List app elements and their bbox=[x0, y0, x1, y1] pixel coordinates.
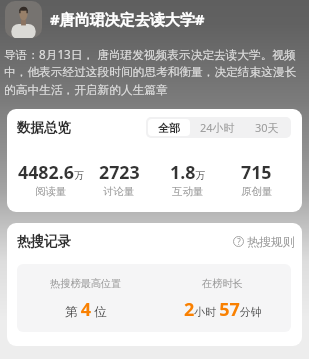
button[interactable]: 24小时 bbox=[190, 119, 245, 136]
staticText: 热搜规则 bbox=[247, 234, 295, 248]
staticText: 4482.6万 bbox=[18, 160, 84, 184]
button[interactable]: Avatar bbox=[5, 1, 42, 38]
staticText: 30天 bbox=[255, 120, 279, 135]
staticText: 热搜记录 bbox=[17, 233, 71, 250]
staticText: 数据总览 bbox=[17, 119, 71, 136]
staticText: 1.8万 bbox=[170, 160, 206, 184]
staticText: 导语：8月13日， 唐尚珺发视频表示决定去读大学。视频中，他表示经过这段时间的思… bbox=[4, 46, 306, 98]
staticText: 715 bbox=[241, 160, 272, 184]
staticText: 阅读量 bbox=[35, 185, 67, 198]
staticText: #唐尚珺决定去读大学# bbox=[50, 9, 205, 29]
staticText: 原创量 bbox=[241, 185, 273, 198]
staticText: 第 4 位 bbox=[65, 297, 107, 322]
button[interactable]: ? bbox=[232, 232, 296, 250]
staticText: 在榜时长 bbox=[202, 277, 243, 290]
staticText: 热搜榜最高位置 bbox=[50, 277, 122, 290]
staticText: 24小时 bbox=[200, 120, 235, 135]
staticText: 2723 bbox=[99, 160, 140, 184]
button[interactable]: 全部 bbox=[148, 119, 190, 136]
staticText: 讨论量 bbox=[103, 185, 135, 198]
button[interactable]: 30天 bbox=[245, 119, 289, 136]
staticText: ? bbox=[237, 236, 241, 247]
staticText: 互动量 bbox=[172, 185, 204, 198]
staticText: 全部 bbox=[158, 121, 180, 135]
staticText: 2小时 57分钟 bbox=[184, 297, 262, 322]
